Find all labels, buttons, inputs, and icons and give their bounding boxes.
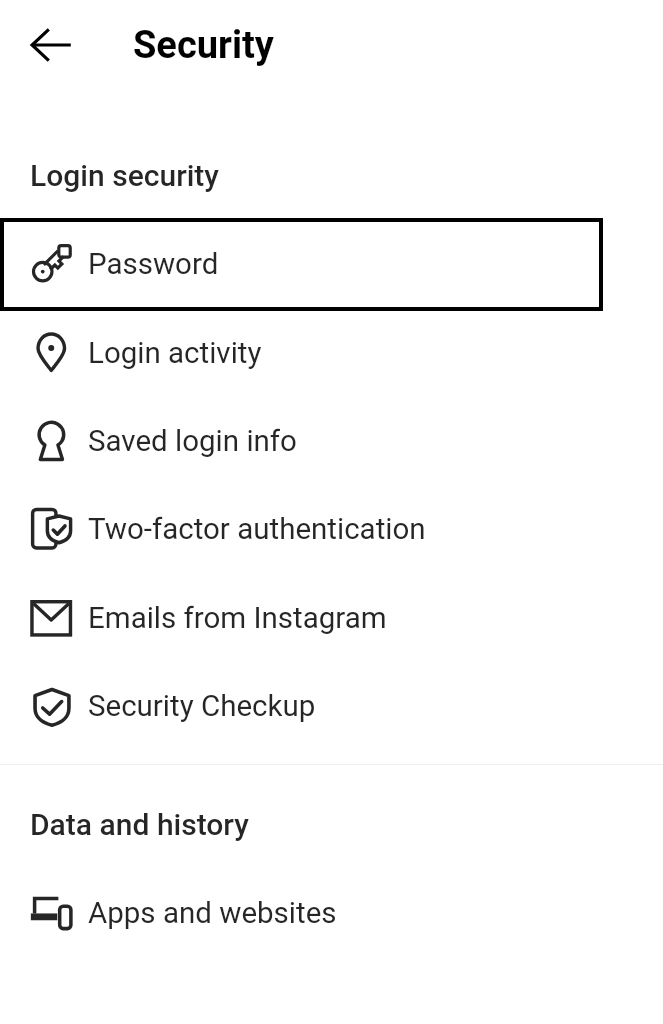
button[interactable]: Emails from Instagram	[0, 574, 663, 662]
button[interactable]: Back	[25, 19, 77, 71]
staticText: Security	[133, 23, 274, 68]
staticText: Saved login info	[88, 424, 297, 459]
button[interactable]: Security Checkup	[0, 662, 663, 750]
button[interactable]: Login activity	[0, 309, 663, 397]
button[interactable]: Two-factor authentication	[0, 485, 663, 573]
staticText: Apps and websites	[88, 896, 337, 931]
button[interactable]: Password	[0, 218, 603, 311]
staticText: Two-factor authentication	[88, 512, 426, 547]
staticText: Data and history	[30, 807, 249, 842]
staticText: Password	[88, 247, 219, 282]
button[interactable]: Saved login info	[0, 397, 663, 485]
staticText: Login security	[30, 158, 219, 193]
staticText: Security Checkup	[88, 689, 316, 724]
staticText: Emails from Instagram	[88, 601, 387, 636]
button[interactable]: Apps and websites	[0, 869, 663, 957]
staticText: Login activity	[88, 336, 262, 371]
